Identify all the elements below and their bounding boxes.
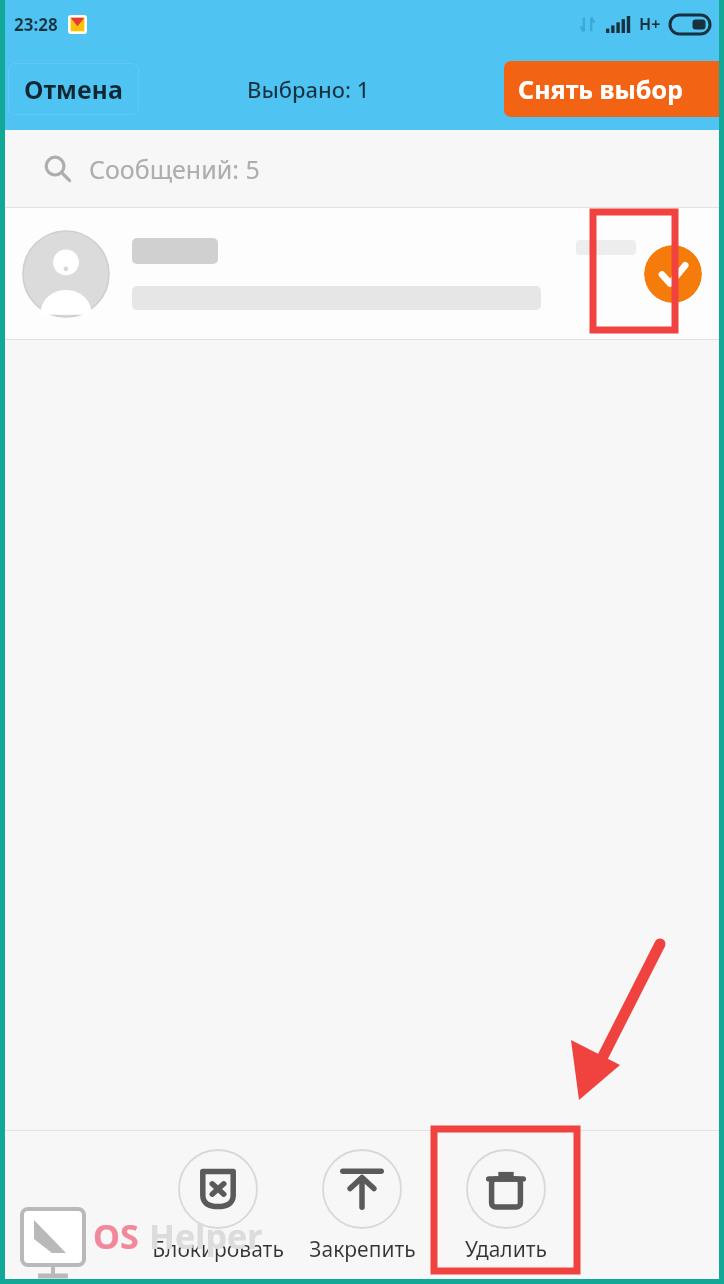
button[interactable]: Selected [644,245,702,303]
staticText: Helper [149,1213,263,1259]
staticText: OS [93,1213,139,1259]
staticText: 23:28 [14,13,58,36]
staticText: Удалить [465,1235,547,1264]
button[interactable]: Блокировать [146,1131,290,1284]
staticText: Сообщений: 5 [89,152,260,186]
staticText: Блокировать [152,1235,284,1264]
staticText: Выбрано: 1 [247,74,370,104]
staticText: Снять выбор [518,72,683,106]
staticText: Отмена [24,72,123,106]
button[interactable]: Закрепить [290,1131,434,1284]
button[interactable]: Сообщений: 5 [0,130,724,207]
staticText: Закрепить [309,1235,416,1264]
button[interactable]: Selected [0,208,724,339]
button[interactable]: Снять выбор [504,61,724,117]
button[interactable]: Отмена [8,63,139,115]
button[interactable]: Удалить [434,1131,578,1284]
staticText: H+ [639,13,661,35]
